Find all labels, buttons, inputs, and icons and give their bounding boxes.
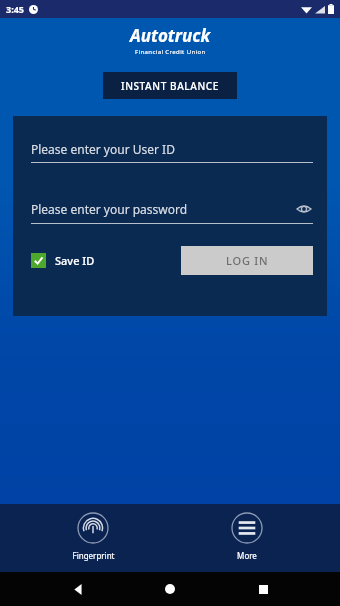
button[interactable]: INSTANT BALANCE [103,72,237,99]
button[interactable]: Show password [295,200,313,218]
button[interactable]: More [187,512,307,561]
staticText: INSTANT BALANCE [121,79,219,93]
button[interactable]: Please enter your password [31,200,313,218]
staticText: LOG IN [226,253,269,268]
staticText: Autotruck [130,24,211,47]
staticText: Save ID [55,253,95,268]
button[interactable]: Fingerprint [33,512,153,561]
staticText: Please enter your User ID [31,141,175,157]
staticText: Fingerprint [72,550,115,561]
button[interactable]: Back [63,574,93,604]
button[interactable]: Please enter your User ID [31,141,313,157]
staticText: 3:45 [6,3,24,15]
staticText: Financial Credit Union [135,48,206,56]
button[interactable]: Recents [248,574,278,604]
button[interactable]: Save ID [31,253,95,268]
button[interactable]: LOG IN [181,246,313,275]
button[interactable]: Home [155,574,185,604]
staticText: More [237,550,257,561]
staticText: Please enter your password [31,201,188,217]
